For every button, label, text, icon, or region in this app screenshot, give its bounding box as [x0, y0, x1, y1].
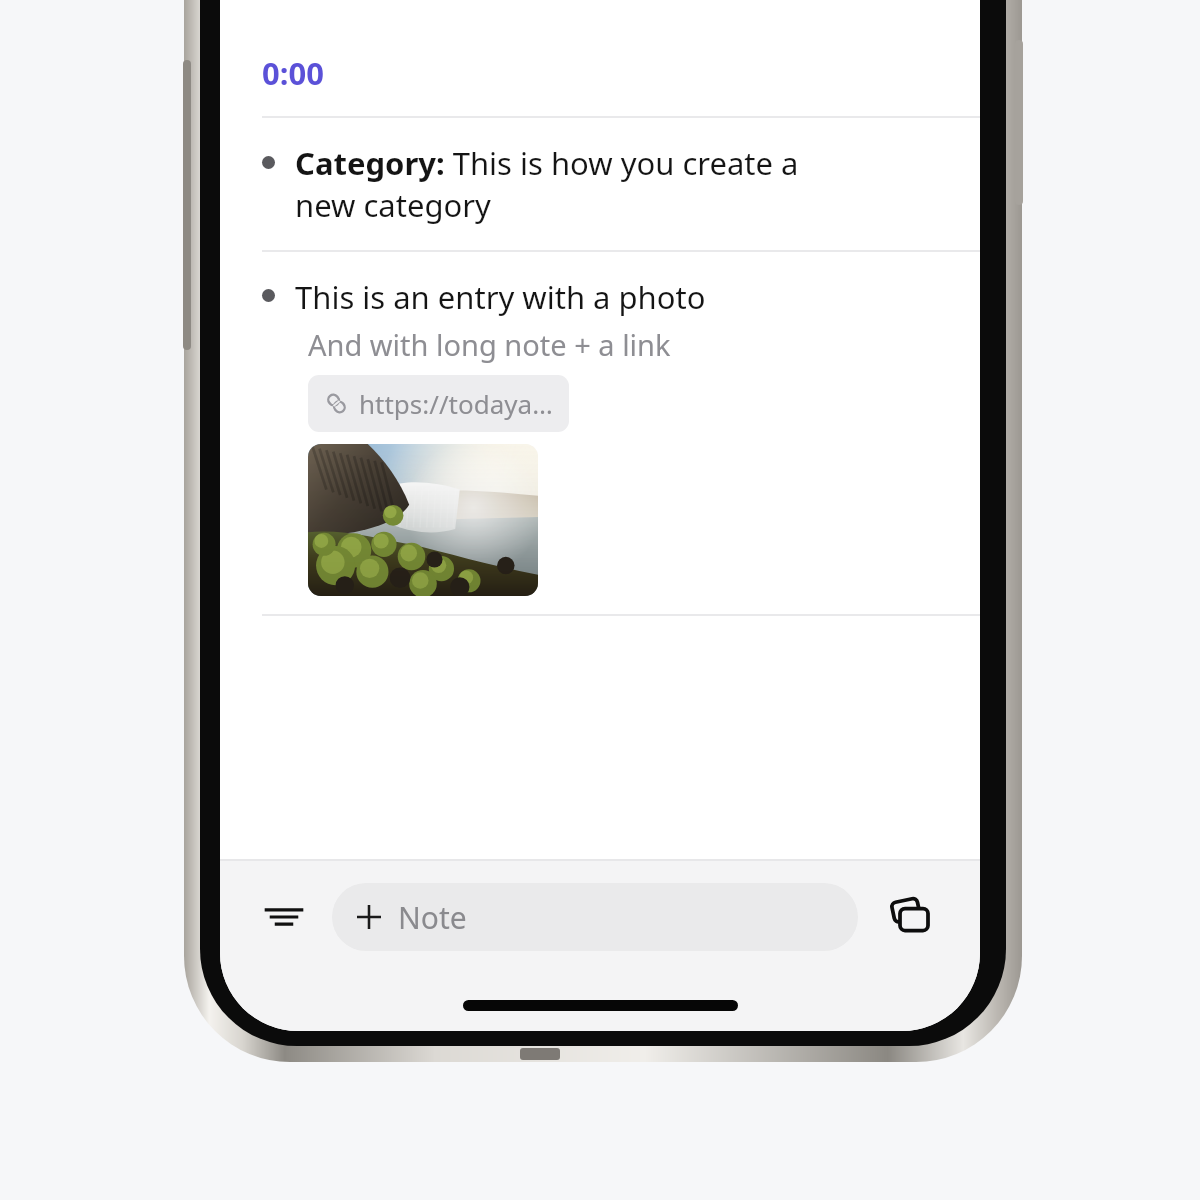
button[interactable]: Category: This is how you create a new c…: [220, 118, 980, 250]
other: Link: [324, 391, 349, 416]
staticText: https://todaya…: [359, 386, 553, 421]
button[interactable]: Sort: [250, 883, 318, 951]
staticText: 0:00: [262, 52, 324, 94]
button[interactable]: This is an entry with a photo: [220, 252, 980, 614]
button[interactable]: Photo: [308, 444, 538, 596]
staticText: Note: [398, 897, 467, 938]
staticText: This is an entry with a photo: [295, 276, 706, 318]
staticText: Category: This is how you create a new c…: [295, 142, 815, 226]
staticText: And with long note + a link: [308, 325, 671, 364]
button[interactable]: Cards: [876, 883, 944, 951]
button[interactable]: Note: [332, 883, 858, 951]
button[interactable]: Link: [308, 375, 569, 432]
